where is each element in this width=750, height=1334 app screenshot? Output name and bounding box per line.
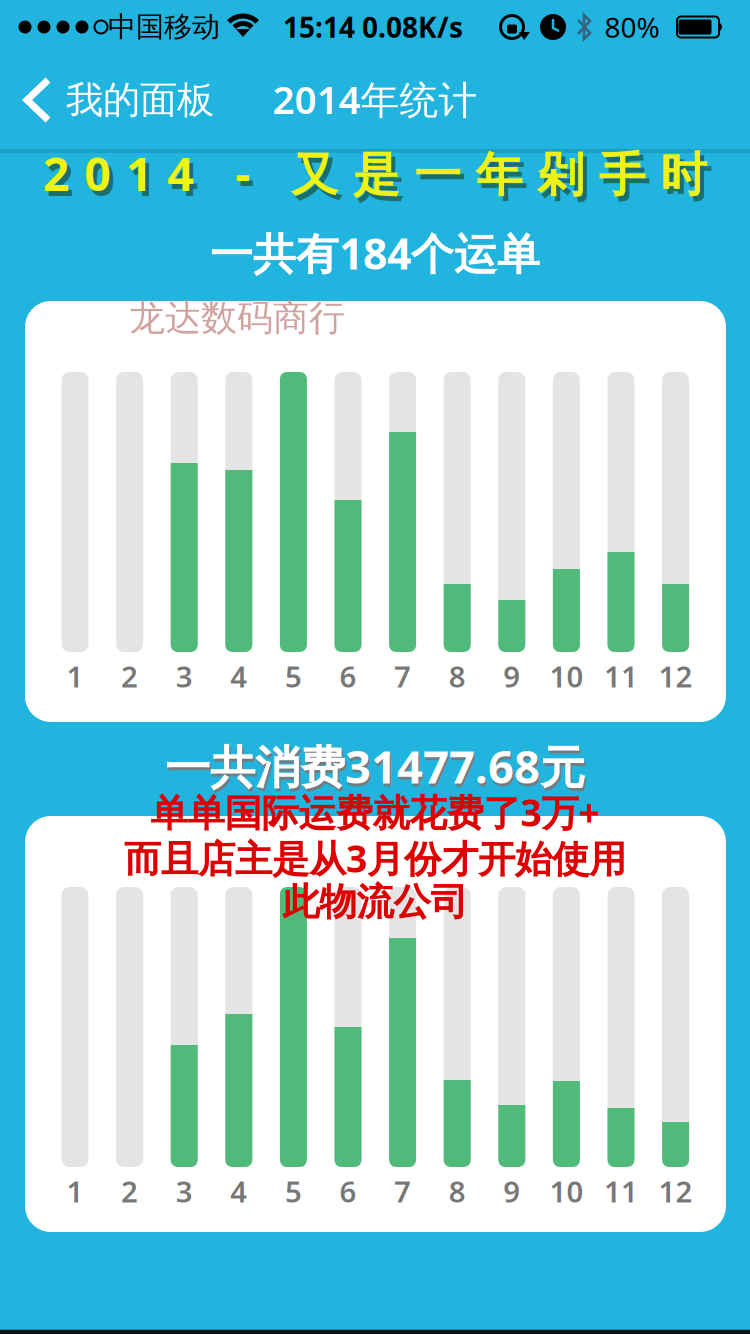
button[interactable]: 我的面板 xyxy=(22,76,214,124)
staticText: 2014 - 又是一年剁手时 xyxy=(43,142,707,204)
staticText: 一共有184个运单 xyxy=(210,225,540,281)
staticText: 1 xyxy=(66,1171,83,1210)
staticText: 3 xyxy=(176,1171,193,1210)
staticText: 11 xyxy=(604,1171,638,1210)
staticText: 7 xyxy=(394,1171,411,1210)
staticText: 6 xyxy=(339,1171,356,1210)
staticText: 11 xyxy=(604,656,638,695)
staticText: 我的面板 xyxy=(66,77,214,123)
staticText: 此物流公司 xyxy=(282,879,467,925)
staticText: 单单国际运费就花费了3万+ xyxy=(150,787,599,837)
staticText: 7 xyxy=(394,656,411,695)
staticText: 9 xyxy=(503,656,520,695)
staticText: 2 xyxy=(121,1171,138,1210)
staticText: 中国移动 xyxy=(108,10,220,44)
staticText: 2 xyxy=(121,656,138,695)
staticText: 5 xyxy=(285,1171,302,1210)
staticText: 6 xyxy=(339,656,356,695)
staticText: 8 xyxy=(449,656,466,695)
staticText: 12 xyxy=(659,1171,693,1210)
staticText: 而且店主是从3月份才开始使用 xyxy=(124,833,626,883)
staticText: 4 xyxy=(230,656,247,695)
staticText: 5 xyxy=(285,656,302,695)
staticText: 3 xyxy=(176,656,193,695)
staticText: 12 xyxy=(659,656,693,695)
staticText: 龙达数码商行 xyxy=(129,296,345,340)
staticText: 8 xyxy=(449,1171,466,1210)
staticText: 2014 - 又是一年剁手时 xyxy=(47,147,711,209)
staticText: 一共消费31477.68元 xyxy=(166,739,586,799)
staticText: 9 xyxy=(503,1171,520,1210)
staticText: 10 xyxy=(549,656,583,695)
staticText: 15:14 0.08K/s xyxy=(283,8,463,46)
staticText: 10 xyxy=(549,1171,583,1210)
staticText: 1 xyxy=(66,656,83,695)
staticText: 80% xyxy=(604,8,659,46)
staticText: 一共消费31477.68元 xyxy=(165,736,585,796)
staticText: 4 xyxy=(230,1171,247,1210)
staticText: 2014年统计 xyxy=(272,73,477,125)
